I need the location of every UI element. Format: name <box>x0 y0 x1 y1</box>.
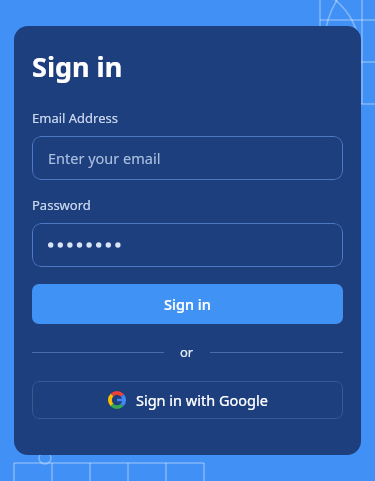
staticText: or <box>180 343 194 361</box>
staticText: Sign in <box>164 294 211 314</box>
button[interactable] <box>32 223 343 267</box>
staticText: Password <box>32 196 91 214</box>
button[interactable]: Enter your email <box>32 136 343 180</box>
other: Google logo <box>108 391 126 409</box>
staticText: Sign in with Google <box>136 390 268 410</box>
button[interactable]: Google logo <box>32 381 343 419</box>
staticText: Enter your email <box>48 148 161 168</box>
staticText: Sign in <box>32 48 123 85</box>
button[interactable]: Sign in <box>32 284 343 324</box>
staticText: Email Address <box>32 109 118 127</box>
